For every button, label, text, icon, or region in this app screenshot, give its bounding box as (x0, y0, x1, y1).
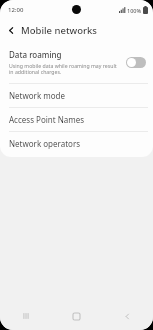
button[interactable]: Home (51, 303, 102, 329)
staticText: Network operators (9, 138, 81, 149)
staticText: Network mode (9, 90, 66, 101)
staticText: Access Point Names (9, 114, 85, 125)
staticText: Mobile networks (21, 24, 97, 37)
button[interactable]: Network operators (0, 132, 153, 155)
button[interactable]: Access Point Names (0, 108, 153, 131)
button[interactable]: Data roaming (126, 57, 146, 68)
button[interactable]: Network mode (0, 84, 153, 107)
staticText: 100% (127, 7, 142, 14)
button[interactable]: Data roaming (0, 42, 153, 83)
staticText: Using mobile data while roaming may resu… (9, 62, 122, 76)
button[interactable]: Back (102, 303, 153, 329)
staticText: Data roaming (9, 49, 62, 60)
button[interactable]: Recent apps (0, 303, 51, 329)
button[interactable]: Navigate up (4, 23, 19, 38)
staticText: 12:00 (8, 6, 24, 14)
